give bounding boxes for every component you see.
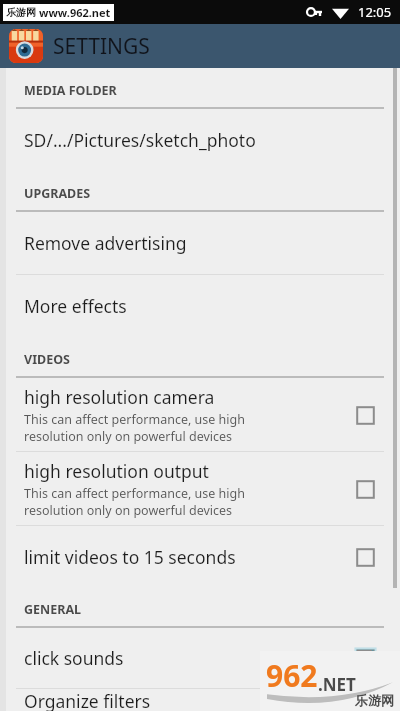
button[interactable]: high resolution camera: [0, 378, 400, 451]
staticText: high resolution camera: [24, 385, 215, 409]
staticText: 12:05: [358, 3, 392, 21]
staticText: click sounds: [24, 646, 124, 670]
staticText: This can affect performance, use high re…: [24, 411, 245, 444]
staticText: GENERAL: [24, 601, 82, 618]
button[interactable]: Organize filters: [0, 689, 400, 711]
staticText: .NET: [318, 673, 356, 696]
staticText: SETTINGS: [53, 32, 150, 61]
staticText: More effects: [24, 294, 127, 318]
button[interactable]: Unchecked: [352, 476, 378, 502]
button[interactable]: click sounds: [0, 628, 400, 688]
button[interactable]: Remove advertising: [0, 212, 400, 274]
staticText: 乐游网: [355, 692, 394, 708]
staticText: VIDEOS: [24, 351, 70, 368]
staticText: This can affect performance, use high re…: [24, 485, 245, 518]
staticText: UPGRADES: [24, 185, 91, 202]
staticText: www.962.net: [39, 5, 111, 20]
staticText: MEDIA FOLDER: [24, 82, 117, 99]
staticText: Organize filters: [24, 689, 151, 711]
staticText: 962: [266, 655, 318, 696]
staticText: 乐游网: [6, 6, 36, 19]
other: App icon: [9, 29, 43, 63]
button[interactable]: Unchecked: [352, 402, 378, 428]
button[interactable]: high resolution output: [0, 452, 400, 525]
staticText: high resolution output: [24, 459, 209, 483]
staticText: limit videos to 15 seconds: [24, 545, 236, 569]
button[interactable]: More effects: [0, 275, 400, 337]
staticText: Remove advertising: [24, 231, 187, 255]
button[interactable]: Unchecked: [352, 544, 378, 570]
button[interactable]: SD/.../Pictures/sketch_photo: [0, 109, 400, 171]
staticText: SD/.../Pictures/sketch_photo: [24, 128, 256, 152]
button[interactable]: Checked: [352, 645, 378, 671]
button[interactable]: limit videos to 15 seconds: [0, 526, 400, 587]
